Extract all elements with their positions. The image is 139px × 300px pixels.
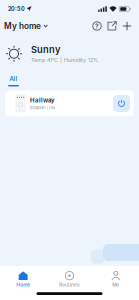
staticText: Sunny <box>31 44 60 55</box>
button[interactable]: Me <box>93 271 139 288</box>
staticText: Temp 41°C | Humidity 12% <box>31 57 98 63</box>
staticText: Bedroom | ON <box>30 105 55 110</box>
staticText: Me <box>112 282 119 288</box>
button[interactable]: Hallway <box>5 90 134 116</box>
staticText: Routines <box>59 282 80 288</box>
button[interactable]: My home <box>4 21 48 31</box>
button[interactable]: Routines <box>46 271 93 288</box>
staticText: Hallway <box>30 97 55 104</box>
button[interactable]: Help <box>92 21 102 31</box>
staticText: My home <box>4 21 41 31</box>
button[interactable]: Home <box>0 271 46 288</box>
staticText: ? <box>95 22 99 30</box>
staticText: All <box>9 75 17 82</box>
staticText: 20:50 <box>8 6 25 12</box>
staticText: Home <box>16 282 30 288</box>
button[interactable]: Edit <box>107 21 117 31</box>
button[interactable]: Add device <box>122 21 132 31</box>
button[interactable]: All <box>8 75 19 86</box>
